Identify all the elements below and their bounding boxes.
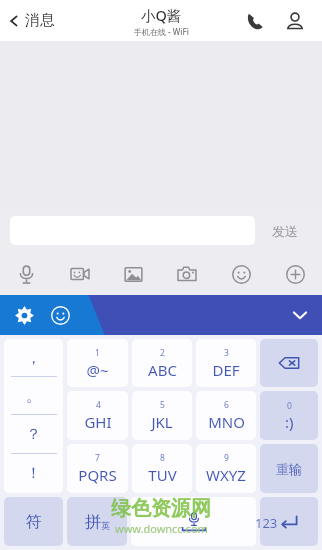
staticText: 9 xyxy=(224,452,229,464)
button[interactable]: Photos xyxy=(106,253,160,295)
button[interactable]: Video call xyxy=(53,253,106,295)
button[interactable]: More xyxy=(268,253,322,295)
staticText: ？ xyxy=(26,425,41,444)
button[interactable]: Keyboard settings xyxy=(8,295,40,335)
staticText: 7 xyxy=(95,452,100,464)
staticText: MNO xyxy=(208,412,245,432)
button[interactable]: 7 xyxy=(67,444,128,493)
button[interactable]: 。 xyxy=(4,377,63,415)
staticText: 0 xyxy=(287,400,292,412)
staticText: DEF xyxy=(212,360,240,380)
button[interactable]: Backspace xyxy=(260,339,318,387)
button[interactable]: 8 xyxy=(132,444,192,493)
staticText: ！ xyxy=(26,464,41,483)
button[interactable]: Camera xyxy=(160,253,214,295)
staticText: JKL xyxy=(151,412,173,432)
staticText: 输 xyxy=(289,461,302,477)
button[interactable]: 9 xyxy=(196,444,256,493)
button[interactable]: 4 xyxy=(67,391,128,440)
button[interactable]: Enter xyxy=(260,497,318,546)
button[interactable]: Contact profile xyxy=(278,4,312,38)
button[interactable]: ？ xyxy=(4,415,63,454)
button[interactable]: 1 xyxy=(67,339,128,387)
staticText: 手机在线 - WiFi xyxy=(134,26,189,37)
button[interactable]: 0 xyxy=(260,391,318,440)
staticText: 5 xyxy=(160,399,165,411)
staticText: 小Q酱 xyxy=(141,5,182,25)
button[interactable]: Call xyxy=(238,4,272,38)
button[interactable]: 拼 xyxy=(67,497,127,546)
button[interactable]: Space, voice input xyxy=(131,497,256,546)
button[interactable]: Hide keyboard xyxy=(278,295,322,335)
staticText: 4 xyxy=(96,399,101,411)
staticText: 拼 xyxy=(85,512,101,532)
button[interactable]: 消息 xyxy=(0,0,63,41)
staticText: TUV xyxy=(148,465,177,485)
staticText: ABC xyxy=(148,360,177,380)
staticText: 3 xyxy=(224,347,229,359)
staticText: 发送 xyxy=(272,223,298,239)
button[interactable]: 6 xyxy=(196,391,256,440)
staticText: www.downcc.com xyxy=(115,521,208,536)
button[interactable]: 重 xyxy=(260,444,318,493)
staticText: 英 xyxy=(101,520,110,531)
button[interactable]: 符 xyxy=(4,497,63,546)
button[interactable]: Emoji xyxy=(40,295,80,335)
staticText: 123 xyxy=(255,514,278,532)
button[interactable]: Voice message xyxy=(0,253,53,295)
staticText: @~ xyxy=(86,360,109,380)
button[interactable]: 2 xyxy=(132,339,192,387)
staticText: 6 xyxy=(224,399,229,411)
button[interactable]: Emoji xyxy=(214,253,268,295)
button[interactable]: 5 xyxy=(132,391,192,440)
staticText: PQRS xyxy=(78,465,117,485)
staticText: GHI xyxy=(84,412,112,432)
button[interactable]: ！ xyxy=(4,454,63,493)
staticText: 消息 xyxy=(25,11,55,30)
button[interactable]: 3 xyxy=(196,339,256,387)
staticText: ， xyxy=(26,349,41,368)
staticText: 1 xyxy=(95,347,100,359)
staticText: 绿色资源网 xyxy=(111,496,211,521)
staticText: WXYZ xyxy=(206,465,246,485)
button[interactable]: 发送 xyxy=(260,216,310,245)
staticText: 2 xyxy=(160,347,165,359)
staticText: 符 xyxy=(26,512,42,532)
staticText: 。 xyxy=(26,387,41,406)
staticText: :) xyxy=(285,412,294,432)
button[interactable]: ， xyxy=(4,339,63,377)
staticText: 重 xyxy=(276,461,289,477)
staticText: 8 xyxy=(160,452,165,464)
